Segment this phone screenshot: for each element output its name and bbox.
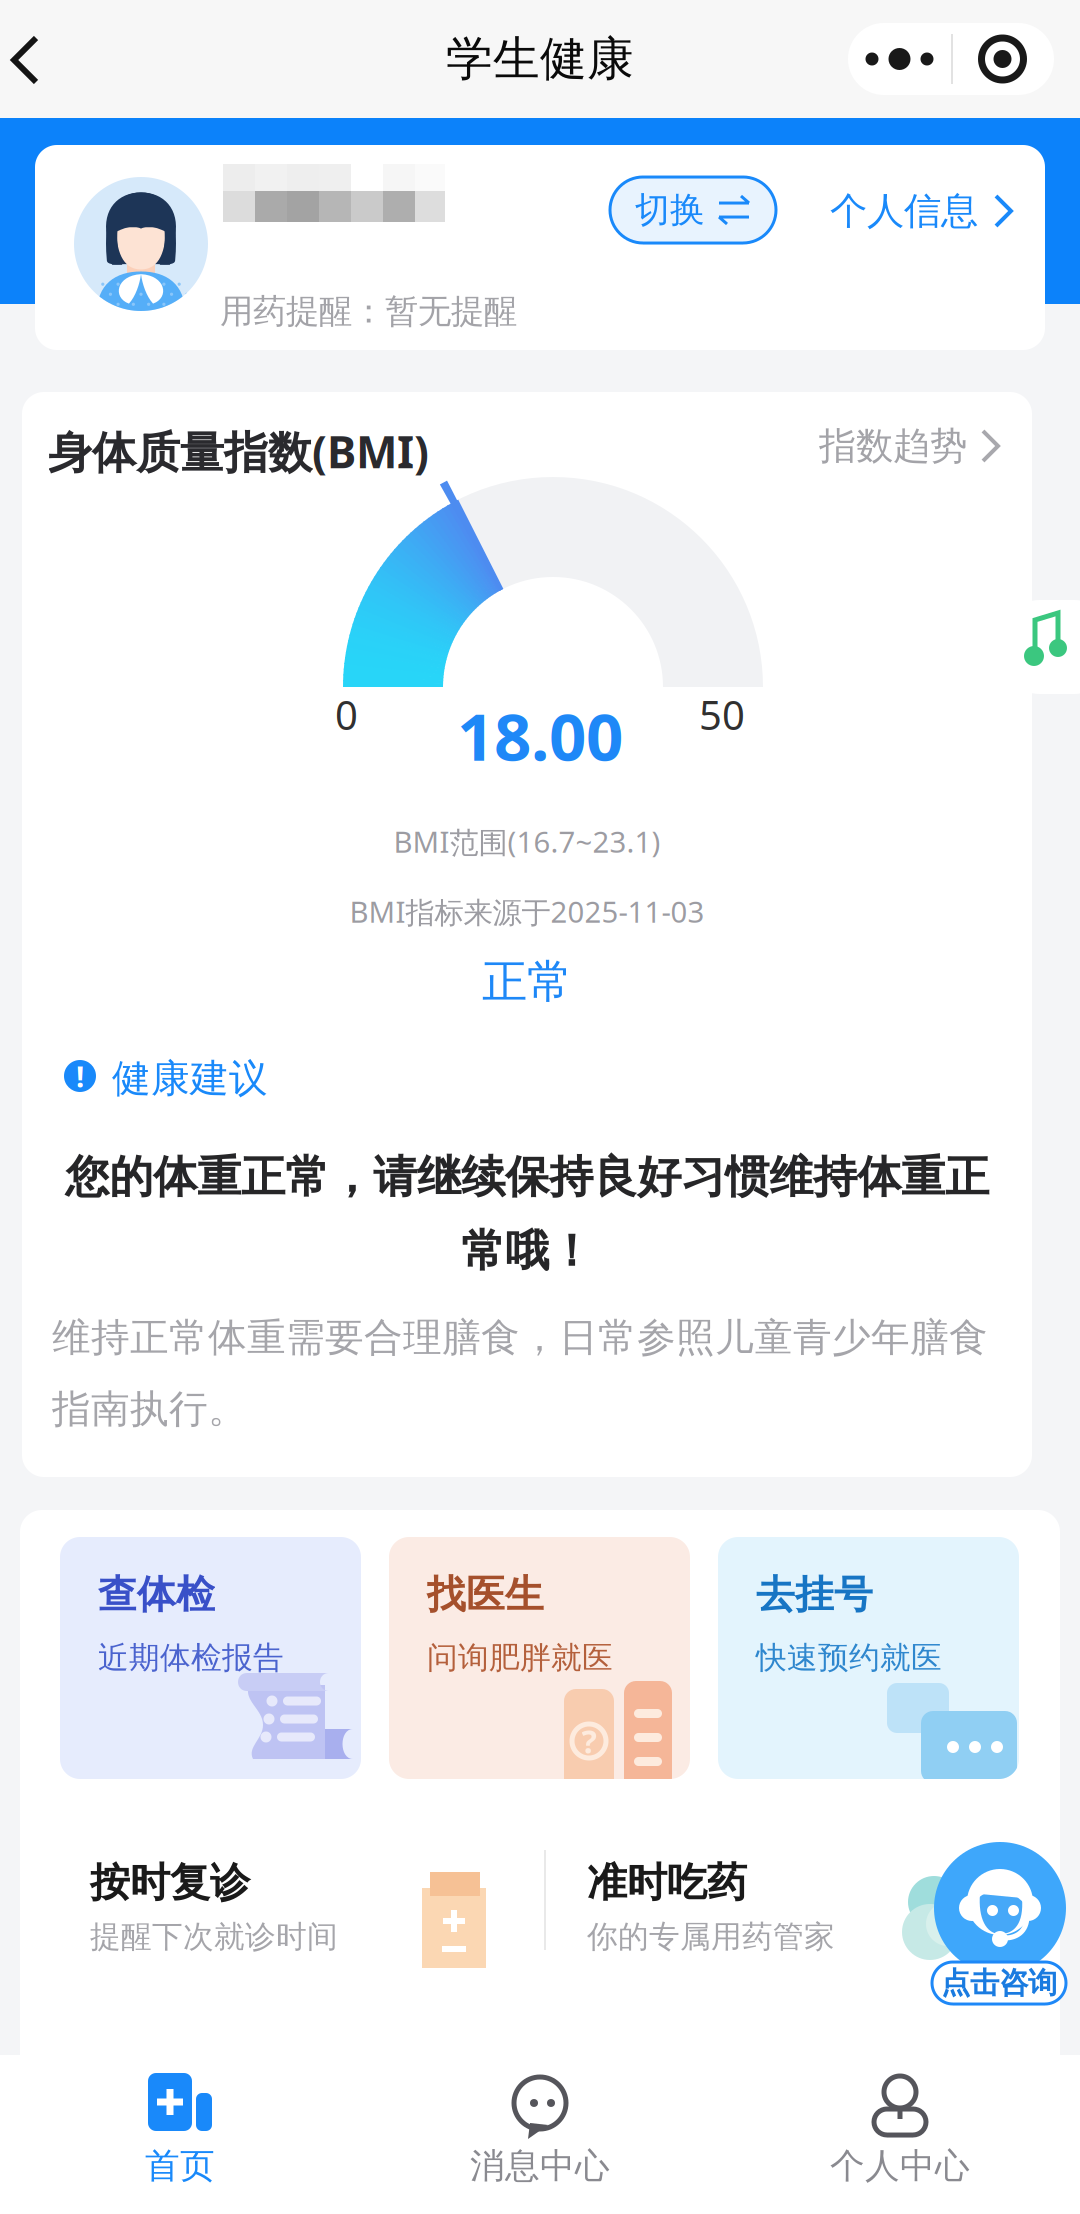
staticText: 按时复诊 [90,1858,250,1907]
staticText: 找医生 [427,1571,544,1618]
staticText: 切换 [635,189,705,231]
staticText: 查体检 [98,1571,215,1618]
staticText: 健康检测 [90,2058,250,2107]
button[interactable]: 切换 [610,177,776,243]
staticText: 提醒下次就诊时间 [90,1918,338,1956]
staticText: 近期体检报告 [98,1639,284,1677]
staticText: 用药提醒：暂无提醒 [220,291,517,332]
staticText: 正常 [482,954,572,1010]
button[interactable]: 按时复诊 [90,1858,510,1968]
button[interactable]: 个人中心 [720,2055,1080,2214]
staticText: ! [76,1056,84,1095]
staticText: 你的专属用药管家 [587,1918,835,1956]
staticText: 个人信息 [830,188,978,234]
button[interactable]: Back [0,8,104,112]
staticText: 维持正常体重需要合理膳食，日常参照儿童青少年膳食指南执行。 [52,1314,988,1433]
button[interactable]: Consult [902,1842,1080,2008]
staticText: BMI指标来源于2025-11-03 [349,892,704,931]
staticText: 准时吃药 [587,1858,747,1907]
staticText: 指数趋势 [819,423,967,469]
staticText: 身体质量指数(BMI) [48,422,429,480]
staticText: 健康建议 [112,1055,268,1102]
staticText: 50 [699,688,745,741]
staticText: 18.00 [457,692,623,779]
staticText: ? [581,1720,596,1762]
staticText: 点击咨询 [941,1965,1057,2001]
staticText: BMI范围(16.7~23.1) [393,822,660,861]
staticText: 个人中心 [830,2145,970,2187]
button[interactable]: 健康检测 [90,2058,510,2108]
button[interactable]: 查体检 [60,1537,361,1779]
button[interactable]: 首页 [0,2055,360,2214]
staticText: 学生健康 [446,30,634,88]
button[interactable]: More [848,23,951,95]
staticText: 0 [335,688,358,741]
button[interactable]: 准时吃药 [587,1858,1007,1968]
staticText: 快速预约就医 [756,1639,942,1677]
staticText: 消息中心 [470,2145,610,2187]
staticText: 您的体重正常，请继续保持良好习惯维持体重正常哦！ [65,1150,989,1278]
staticText: 去挂号 [756,1571,873,1618]
button[interactable]: 找医生 [389,1537,690,1779]
staticText: 首页 [145,2145,215,2187]
button[interactable]: 健康自测 [587,2058,1007,2108]
button[interactable]: 去挂号 [718,1537,1019,1779]
button[interactable]: 个人信息 [830,171,1050,251]
button[interactable]: 指数趋势 [792,414,1002,478]
button[interactable]: 消息中心 [360,2055,720,2214]
staticText: 问询肥胖就医 [427,1639,613,1677]
button[interactable]: Close [951,23,1054,95]
button[interactable]: Music [1002,600,1080,694]
